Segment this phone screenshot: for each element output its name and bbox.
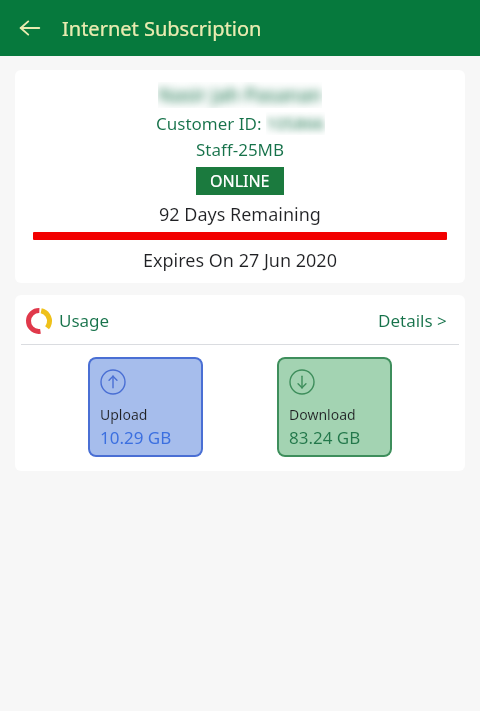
staticText: Upload	[100, 405, 148, 424]
button[interactable]: Nasir Jah Pasanan	[15, 70, 465, 283]
button[interactable]: ONLINE	[196, 167, 284, 195]
other: Usage chart	[25, 307, 53, 335]
staticText: 92 Days Remaining	[159, 202, 321, 227]
button[interactable]: Download	[277, 357, 392, 457]
staticText: Internet Subscription	[62, 15, 262, 42]
staticText: Expires On 27 Jun 2020	[143, 248, 337, 273]
staticText: Nasir Jah Pasanan	[158, 82, 322, 108]
button[interactable]: Details >	[374, 305, 451, 336]
staticText: 10.29 GB	[100, 426, 172, 449]
button[interactable]: Upload	[88, 357, 203, 457]
staticText: Customer ID:	[156, 112, 266, 135]
staticText: Usage	[59, 309, 110, 332]
staticText: Download	[289, 405, 356, 424]
staticText: ONLINE	[210, 170, 270, 192]
staticText: Details >	[378, 309, 447, 332]
staticText: 83.24 GB	[289, 426, 361, 449]
staticText: Staff-25MB	[196, 138, 285, 161]
staticText: 105866	[266, 112, 325, 135]
button[interactable]: Back	[10, 8, 50, 48]
